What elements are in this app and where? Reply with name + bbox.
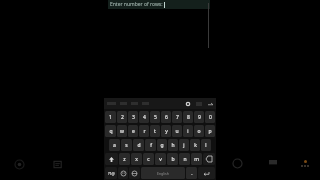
- staticText: .: [191, 170, 193, 177]
- button[interactable]: v: [155, 153, 166, 165]
- staticText: o: [197, 128, 201, 135]
- button[interactable]: .: [186, 167, 197, 179]
- button[interactable]: 6: [161, 111, 171, 123]
- button[interactable]: Symbols: [105, 167, 117, 179]
- button[interactable]: 8: [183, 111, 193, 123]
- staticText: u: [175, 128, 179, 135]
- button[interactable]: 4: [139, 111, 149, 123]
- button[interactable]: o: [194, 125, 204, 137]
- button[interactable]: j: [179, 139, 189, 151]
- button[interactable]: m: [191, 153, 202, 165]
- button[interactable]: Backspace: [203, 153, 215, 165]
- button[interactable]: 3: [128, 111, 138, 123]
- staticText: e: [132, 128, 135, 135]
- button[interactable]: q: [105, 125, 116, 137]
- staticText: q: [109, 128, 113, 135]
- staticText: g: [160, 142, 164, 149]
- button[interactable]: Emoji: [118, 167, 128, 179]
- staticText: 5: [154, 114, 157, 121]
- staticText: z: [123, 156, 126, 163]
- staticText: i: [187, 128, 189, 135]
- staticText: 8: [187, 114, 190, 121]
- staticText: s: [125, 142, 128, 149]
- staticText: k: [194, 142, 197, 149]
- staticText: y: [165, 128, 168, 135]
- button[interactable]: Expand: [207, 101, 213, 107]
- staticText: d: [137, 142, 141, 149]
- button[interactable]: s: [121, 139, 132, 151]
- button[interactable]: e: [128, 125, 138, 137]
- staticText: 0: [209, 114, 212, 121]
- staticText: 7: [176, 114, 179, 121]
- button[interactable]: h: [168, 139, 178, 151]
- staticText: j: [183, 142, 185, 149]
- staticText: 3: [132, 114, 135, 121]
- staticText: 1: [109, 114, 112, 121]
- button[interactable]: l: [201, 139, 211, 151]
- button[interactable]: i: [183, 125, 193, 137]
- button[interactable]: Shift: [105, 153, 118, 165]
- staticText: l: [205, 142, 207, 149]
- button[interactable]: Enter: [198, 167, 215, 179]
- button[interactable]: c: [143, 153, 154, 165]
- staticText: a: [113, 142, 116, 149]
- staticText: English: [157, 171, 169, 176]
- button[interactable]: n: [179, 153, 190, 165]
- button[interactable]: 9: [194, 111, 204, 123]
- button[interactable]: t: [150, 125, 160, 137]
- button[interactable]: Space: [141, 167, 185, 179]
- button[interactable]: Enter number of rows:: [108, 0, 210, 9]
- staticText: Enter number of rows:: [110, 1, 163, 8]
- button[interactable]: d: [133, 139, 144, 151]
- button[interactable]: 7: [172, 111, 182, 123]
- button[interactable]: z: [119, 153, 130, 165]
- button[interactable]: k: [190, 139, 200, 151]
- staticText: ?1@: [108, 171, 115, 176]
- button[interactable]: Language: [129, 167, 140, 179]
- staticText: 2: [121, 114, 124, 121]
- staticText: c: [147, 156, 150, 163]
- staticText: m: [194, 156, 199, 163]
- button[interactable]: 1: [105, 111, 116, 123]
- button[interactable]: u: [172, 125, 182, 137]
- staticText: 9: [198, 114, 201, 121]
- staticText: w: [120, 128, 124, 135]
- staticText: x: [135, 156, 138, 163]
- staticText: h: [171, 142, 175, 149]
- button[interactable]: 0: [205, 111, 215, 123]
- button[interactable]: b: [167, 153, 178, 165]
- button[interactable]: p: [205, 125, 215, 137]
- button[interactable]: More options: [298, 156, 312, 170]
- button[interactable]: r: [139, 125, 149, 137]
- button[interactable]: x: [131, 153, 142, 165]
- staticText: b: [171, 156, 175, 163]
- button[interactable]: w: [117, 125, 127, 137]
- button[interactable]: Camera: [14, 159, 25, 170]
- staticText: 4: [143, 114, 146, 121]
- staticText: v: [159, 156, 162, 163]
- button[interactable]: f: [145, 139, 156, 151]
- staticText: r: [143, 128, 146, 135]
- button[interactable]: y: [161, 125, 171, 137]
- button[interactable]: g: [157, 139, 167, 151]
- button[interactable]: 5: [150, 111, 160, 123]
- staticText: p: [208, 128, 212, 135]
- button[interactable]: Recents: [232, 158, 243, 169]
- staticText: f: [150, 142, 152, 149]
- button[interactable]: Settings: [184, 100, 191, 107]
- staticText: t: [154, 128, 156, 135]
- button[interactable]: Notes: [53, 159, 64, 170]
- staticText: n: [183, 156, 187, 163]
- button[interactable]: 2: [117, 111, 127, 123]
- button[interactable]: Stop: [267, 158, 278, 169]
- staticText: 6: [165, 114, 168, 121]
- button[interactable]: a: [109, 139, 120, 151]
